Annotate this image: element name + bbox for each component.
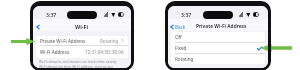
staticText: Rotating	[175, 56, 194, 62]
staticText: Wi-Fi networks and devices can track oth…	[39, 59, 117, 68]
button[interactable]: Back	[33, 22, 42, 31]
button[interactable]: Rotating	[171, 54, 265, 64]
button[interactable]: Back	[168, 22, 188, 31]
staticText: Private Wi-Fi Address	[40, 38, 86, 44]
button[interactable]: Fixed	[171, 43, 265, 53]
staticText: Off	[175, 34, 182, 40]
staticText: 3:37	[46, 11, 57, 18]
staticText: Wi-Fi Address	[40, 49, 70, 55]
staticText: Rotating	[100, 38, 119, 44]
staticText: Fixed	[175, 45, 187, 51]
staticText: Wi-Fi	[75, 23, 89, 30]
button[interactable]: Off	[171, 32, 265, 42]
button[interactable]: Wi-Fi Address	[36, 46, 128, 58]
button[interactable]: Private Wi-Fi Address	[36, 36, 128, 45]
staticText: Back	[175, 24, 186, 30]
staticText: 72:31:84:5D:38:9A	[85, 49, 124, 55]
staticText: Private Wi-Fi Address	[196, 23, 247, 30]
staticText: 3:37	[181, 11, 192, 18]
